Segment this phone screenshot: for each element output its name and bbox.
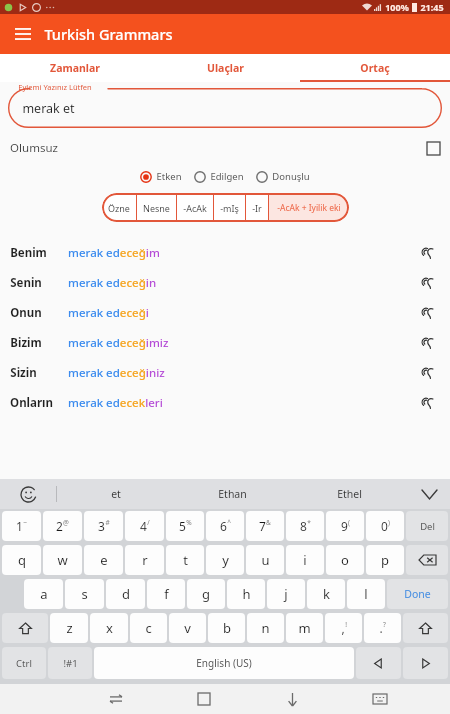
- staticText: et: [111, 487, 121, 501]
- staticText: -AcAk + Iyilik eki: [277, 202, 341, 214]
- button[interactable]: Olumsuz: [10, 138, 440, 158]
- button[interactable]: Donuşlu: [256, 170, 310, 183]
- button[interactable]: Onların: [0, 388, 450, 418]
- button[interactable]: i: [286, 545, 324, 575]
- button[interactable]: z: [50, 613, 88, 643]
- button[interactable]: p: [366, 545, 404, 575]
- button[interactable]: Home: [160, 684, 248, 714]
- button[interactable]: Collapse suggestions: [408, 479, 450, 509]
- button[interactable]: Ctrl: [2, 647, 46, 679]
- button[interactable]: k: [307, 579, 345, 609]
- button[interactable]: Del: [406, 511, 448, 541]
- staticText: #: [105, 518, 110, 527]
- staticText: 9: [341, 518, 348, 534]
- button[interactable]: -Ir: [246, 193, 268, 222]
- button[interactable]: Cursor right: [403, 647, 448, 679]
- button[interactable]: 3: [84, 511, 123, 541]
- button[interactable]: .: [364, 613, 401, 643]
- button[interactable]: v: [169, 613, 206, 643]
- button[interactable]: Recent apps: [72, 684, 160, 714]
- button[interactable]: w: [43, 545, 82, 575]
- button[interactable]: h: [227, 579, 265, 609]
- button[interactable]: 6: [206, 511, 244, 541]
- button[interactable]: Benim: [0, 238, 450, 268]
- button[interactable]: d: [106, 579, 145, 609]
- button[interactable]: o: [326, 545, 364, 575]
- staticText: merak et: [22, 100, 75, 117]
- button[interactable]: Shift: [2, 613, 48, 643]
- button[interactable]: -AcAk + Iyilik eki: [269, 193, 349, 222]
- button[interactable]: 9: [326, 511, 364, 541]
- staticText: Etken: [156, 170, 182, 183]
- button[interactable]: g: [187, 579, 225, 609]
- staticText: Olumsuz: [10, 140, 58, 156]
- button[interactable]: Play pronunciation: [418, 362, 440, 384]
- button[interactable]: s: [65, 579, 104, 609]
- button[interactable]: Play pronunciation: [418, 332, 440, 354]
- button[interactable]: Ortaç: [300, 54, 450, 82]
- button[interactable]: Ethel: [291, 479, 408, 509]
- button[interactable]: y: [206, 545, 244, 575]
- button[interactable]: Play pronunciation: [418, 302, 440, 324]
- button[interactable]: Done: [387, 579, 448, 609]
- button[interactable]: Hide keyboard: [248, 684, 336, 714]
- button[interactable]: Play pronunciation: [418, 272, 440, 294]
- button[interactable]: q: [2, 545, 41, 575]
- button[interactable]: 1: [2, 511, 41, 541]
- button[interactable]: Open navigation menu: [10, 21, 36, 47]
- button[interactable]: t: [166, 545, 204, 575]
- button[interactable]: Emoji: [0, 479, 56, 509]
- staticText: Ctrl: [16, 657, 32, 670]
- button[interactable]: Play pronunciation: [418, 242, 440, 264]
- staticText: 8: [300, 518, 307, 534]
- button[interactable]: 0: [366, 511, 404, 541]
- button[interactable]: f: [147, 579, 185, 609]
- button[interactable]: Etken: [140, 170, 182, 183]
- button[interactable]: Ethan: [174, 479, 291, 509]
- button[interactable]: Zamanlar: [0, 54, 150, 82]
- button[interactable]: !#1: [48, 647, 92, 679]
- button[interactable]: Senin: [0, 268, 450, 298]
- staticText: Edilgen: [210, 170, 244, 183]
- button[interactable]: 4: [125, 511, 164, 541]
- button[interactable]: English (US): [94, 647, 354, 679]
- button[interactable]: Ulaçlar: [150, 54, 300, 82]
- button[interactable]: Onun: [0, 298, 450, 328]
- button[interactable]: Cursor left: [356, 647, 401, 679]
- button[interactable]: Shift: [403, 613, 448, 643]
- button[interactable]: Play pronunciation: [418, 392, 440, 414]
- button[interactable]: -mIş: [214, 193, 245, 222]
- button[interactable]: Nesne: [137, 193, 176, 222]
- button[interactable]: e: [84, 545, 123, 575]
- button[interactable]: Bizim: [0, 328, 450, 358]
- button[interactable]: -AcAk: [177, 193, 213, 222]
- staticText: o: [341, 551, 349, 569]
- button[interactable]: b: [208, 613, 245, 643]
- button[interactable]: 8: [286, 511, 324, 541]
- button[interactable]: j: [267, 579, 305, 609]
- button[interactable]: 2: [43, 511, 82, 541]
- button[interactable]: et: [57, 479, 174, 509]
- button[interactable]: c: [130, 613, 167, 643]
- button[interactable]: x: [90, 613, 128, 643]
- button[interactable]: n: [247, 613, 284, 643]
- button[interactable]: m: [286, 613, 323, 643]
- staticText: &: [266, 518, 271, 527]
- staticText: %: [186, 518, 192, 527]
- button[interactable]: Sizin: [0, 358, 450, 388]
- button[interactable]: r: [125, 545, 164, 575]
- button[interactable]: Edilgen: [194, 170, 244, 183]
- button[interactable]: 5: [166, 511, 204, 541]
- button[interactable]: Backspace: [406, 545, 448, 575]
- button[interactable]: ,: [325, 613, 362, 643]
- staticText: y: [222, 551, 229, 569]
- button[interactable]: a: [24, 579, 63, 609]
- button[interactable]: 7: [246, 511, 284, 541]
- staticText: 6: [220, 518, 227, 534]
- button[interactable]: Özne: [102, 193, 136, 222]
- button[interactable]: Switch keyboard: [336, 684, 424, 714]
- button[interactable]: u: [246, 545, 284, 575]
- staticText: i: [303, 551, 307, 569]
- staticText: 100%: [385, 1, 409, 13]
- button[interactable]: l: [347, 579, 385, 609]
